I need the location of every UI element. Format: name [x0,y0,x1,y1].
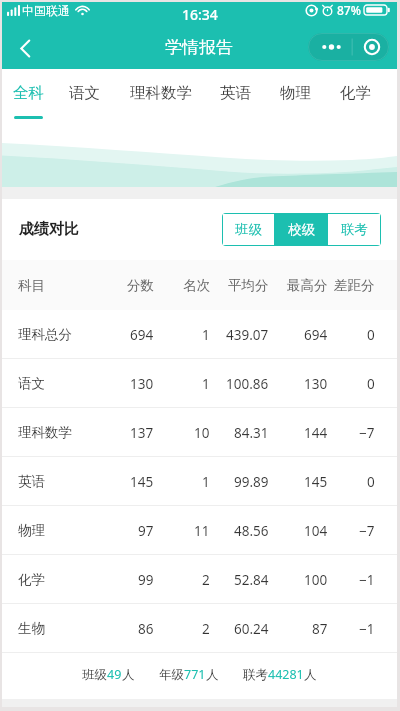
button[interactable]: 联考 [328,214,380,245]
staticText: 人 [304,667,317,683]
staticText: 英语 [18,473,45,490]
button[interactable]: 化学 [2,555,397,604]
button[interactable]: 物理 [261,69,329,119]
staticText: 班级 [82,667,107,683]
staticText: −7 [359,522,375,540]
staticText: 694 [304,326,328,344]
staticText: 平均分 [228,277,269,294]
staticText: 物理 [280,83,311,103]
staticText: 104 [304,522,328,540]
staticText: 0 [367,375,375,393]
staticText: 2 [202,620,210,638]
staticText: 100.86 [226,375,269,393]
staticText: 52.84 [234,571,269,589]
staticText: 科目 [18,277,45,294]
staticText: 联考 [341,221,368,238]
staticText: 87 [312,620,328,638]
staticText: 人 [206,667,219,683]
staticText: 49 [107,666,122,683]
staticText: 0 [367,473,375,491]
staticText: 10 [194,424,210,442]
staticText: 人 [122,667,135,683]
staticText: 0 [367,326,375,344]
staticText: 英语 [220,83,251,103]
button[interactable]: 理科数学 [127,69,195,119]
button[interactable]: 英语 [201,69,269,119]
staticText: 145 [130,473,154,491]
staticText: 100 [304,571,328,589]
staticText: 48.56 [234,522,269,540]
button[interactable]: More options [308,33,389,61]
staticText: 1 [202,375,210,393]
staticText: 分数 [127,277,154,294]
button[interactable]: 校级 [275,214,327,245]
staticText: −1 [359,571,375,589]
staticText: 86 [138,620,154,638]
staticText: 联考 [243,667,268,683]
staticText: 物理 [18,522,45,539]
staticText: 化学 [18,571,45,588]
staticText: −1 [359,620,375,638]
staticText: 中国联通 [22,3,70,18]
staticText: 99 [138,571,154,589]
staticText: 771 [184,666,206,683]
staticText: 年级 [159,667,184,683]
staticText: 1 [202,473,210,491]
staticText: 84.31 [234,424,269,442]
staticText: 1 [202,326,210,344]
staticText: 差距分 [334,277,375,294]
staticText: 144 [304,424,328,442]
staticText: 名次 [183,277,210,294]
staticText: 语文 [18,375,45,392]
staticText: 2 [202,571,210,589]
staticText: 137 [130,424,154,442]
button[interactable]: 物理 [2,506,397,555]
staticText: 439.07 [226,326,269,344]
staticText: 145 [304,473,328,491]
staticText: 语文 [69,83,100,103]
button[interactable]: 理科总分 [2,310,397,359]
staticText: 16:34 [182,5,218,24]
staticText: 99.89 [234,473,269,491]
staticText: 班级 [235,221,262,238]
button[interactable]: 生物 [2,604,397,653]
staticText: 成绩对比 [19,220,79,239]
staticText: 理科数学 [130,83,192,103]
button[interactable]: 英语 [2,457,397,506]
staticText: 最高分 [287,277,328,294]
staticText: 理科数学 [18,424,72,441]
staticText: 理科总分 [18,326,72,343]
staticText: 130 [130,375,154,393]
button[interactable]: 全科 [0,69,62,119]
button[interactable]: 班级 [223,214,274,245]
staticText: 60.24 [234,620,269,638]
staticText: 97 [138,522,154,540]
staticText: 44281 [268,666,304,683]
staticText: 生物 [18,620,45,637]
button[interactable]: Back [6,29,44,67]
staticText: −7 [359,424,375,442]
button[interactable]: 化学 [321,69,389,119]
button[interactable]: 语文 [50,69,118,119]
staticText: 全科 [13,83,44,103]
staticText: 87% [337,2,361,18]
staticText: 校级 [288,221,315,238]
button[interactable]: 语文 [2,359,397,408]
staticText: 化学 [340,83,371,103]
button[interactable]: 理科数学 [2,408,397,457]
staticText: 130 [304,375,328,393]
staticText: 11 [194,522,210,540]
staticText: 694 [130,326,154,344]
staticText: 学情报告 [165,37,233,58]
